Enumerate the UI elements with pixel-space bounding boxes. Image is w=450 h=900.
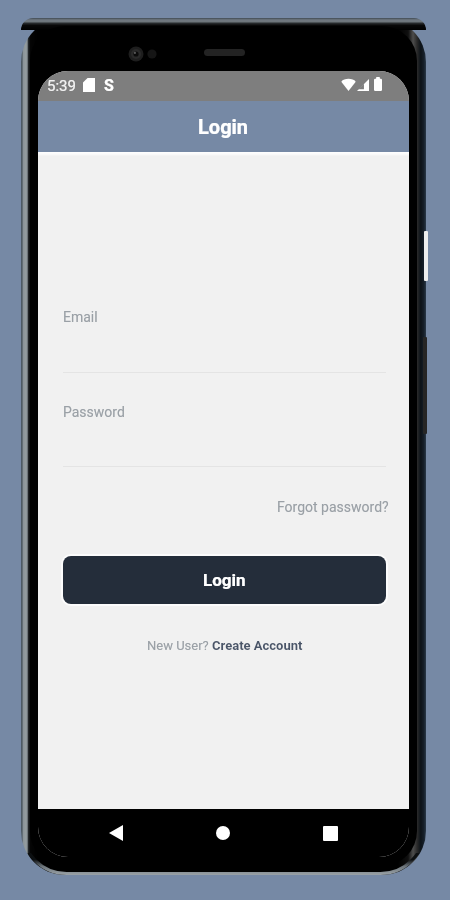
button[interactable]: Forgot password? xyxy=(277,499,389,515)
staticText: Login xyxy=(203,570,246,590)
button[interactable]: Password xyxy=(63,385,386,467)
button[interactable]: Email xyxy=(63,290,386,373)
staticText: Forgot password? xyxy=(277,499,389,515)
staticText: S xyxy=(104,76,114,95)
staticText: Password xyxy=(63,404,125,420)
staticText: Login xyxy=(198,115,249,138)
button[interactable]: Back xyxy=(80,809,152,857)
staticText: Create Account xyxy=(212,638,303,653)
button[interactable]: Home xyxy=(187,809,259,857)
staticText: 5:39 xyxy=(47,77,76,95)
staticText: New User? xyxy=(147,638,212,653)
button[interactable]: Login xyxy=(63,556,386,604)
button[interactable]: Create Account xyxy=(212,638,303,653)
button[interactable]: Recent apps xyxy=(294,809,366,857)
button[interactable]: Power xyxy=(424,231,428,281)
staticText: Email xyxy=(63,309,98,325)
